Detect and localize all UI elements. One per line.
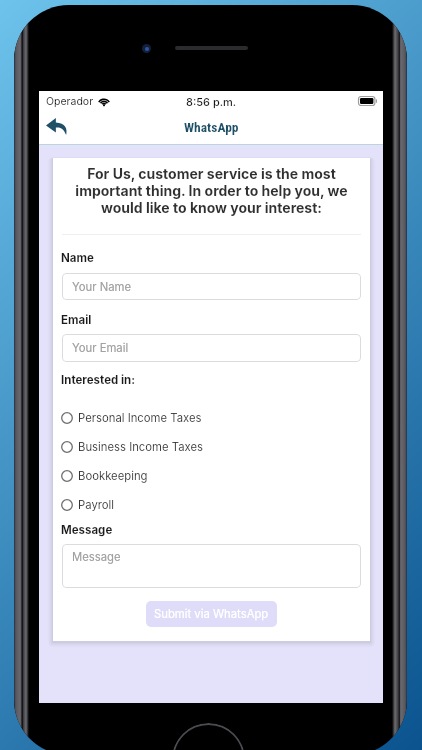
staticText: Name [61, 251, 94, 265]
button[interactable]: Bookkeeping [61, 461, 360, 490]
staticText: WhatsApp [184, 119, 239, 135]
staticText: 8:56 p.m. [186, 95, 237, 108]
staticText: Operador [46, 95, 94, 108]
button[interactable]: Your Name [62, 273, 361, 300]
button[interactable]: Your Email [62, 334, 361, 362]
staticText: Message [72, 550, 121, 564]
button[interactable]: Business Income Taxes [61, 432, 360, 461]
staticText: Email [61, 313, 92, 327]
staticText: Submit via WhatsApp [154, 607, 269, 621]
button[interactable]: Back [42, 112, 70, 140]
staticText: Interested in: [61, 373, 136, 387]
staticText: Personal Income Taxes [78, 411, 202, 425]
staticText: For Us, customer service is the most imp… [63, 165, 360, 216]
staticText: Your Email [72, 341, 129, 355]
staticText: Bookkeeping [78, 469, 148, 483]
button[interactable]: Submit via WhatsApp [146, 601, 277, 627]
staticText: Payroll [78, 498, 115, 512]
button[interactable]: Payroll [61, 490, 360, 519]
staticText: Business Income Taxes [78, 440, 203, 454]
button[interactable]: Message [62, 544, 361, 588]
button[interactable]: Personal Income Taxes [61, 403, 360, 432]
staticText: Your Name [72, 280, 132, 294]
staticText: Message [61, 523, 113, 537]
